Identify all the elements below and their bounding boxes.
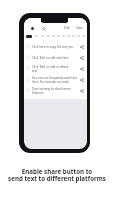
button[interactable]: Edit xyxy=(63,26,71,30)
staticText: Click 'Edit' to add or delete existing xyxy=(32,65,77,69)
button[interactable]: Click here to copy the text you can xyxy=(24,41,87,52)
staticText: Edit xyxy=(64,26,70,30)
button[interactable]: Search xyxy=(40,25,47,32)
button[interactable]: Menu xyxy=(29,25,36,32)
button[interactable]: Share xyxy=(79,55,84,60)
staticText: Tune settings to check more xyxy=(32,87,71,91)
staticText: Save xyxy=(76,26,83,30)
button[interactable]: Save xyxy=(75,26,84,30)
staticText: text xyxy=(32,69,38,73)
staticText: Click here to copy the text you can xyxy=(32,45,77,49)
button[interactable]: Share xyxy=(79,66,84,71)
button[interactable]: Share xyxy=(79,44,84,49)
button[interactable]: Tune settings to check more xyxy=(24,85,87,96)
button[interactable]: All xyxy=(26,35,32,38)
button[interactable]: You can use frequently used text xyxy=(24,74,87,85)
staticText: here. For example as email xyxy=(32,80,70,84)
staticText: Click 'Edit' to add new text xyxy=(32,56,68,60)
button[interactable]: Share xyxy=(79,88,84,93)
button[interactable]: Click 'Edit' to add or delete existing xyxy=(24,63,87,74)
button[interactable]: Share xyxy=(79,77,84,82)
staticText: features xyxy=(32,91,44,95)
staticText: You can use frequently used text xyxy=(32,76,77,80)
staticText: Enable share button to send text to diff… xyxy=(8,167,106,183)
button[interactable]: Click 'Edit' to add new text xyxy=(24,52,87,63)
